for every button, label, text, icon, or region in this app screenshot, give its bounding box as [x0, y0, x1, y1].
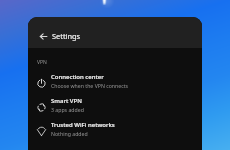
button[interactable]: Trusted WiFi networks	[28, 117, 202, 141]
staticText: 3 apps added	[51, 106, 84, 113]
staticText: Trusted WiFi networks	[51, 121, 115, 129]
staticText: VPN	[37, 59, 47, 66]
staticText: Settings	[52, 31, 81, 41]
button[interactable]: Back	[34, 27, 53, 46]
button[interactable]: Smart VPN	[28, 93, 202, 117]
staticText: Nothing added	[51, 130, 88, 137]
button[interactable]: Connection center	[28, 69, 202, 93]
staticText: Connection center	[51, 73, 104, 81]
staticText: Choose when the VPN connects	[51, 82, 128, 89]
staticText: Smart VPN	[51, 97, 82, 105]
